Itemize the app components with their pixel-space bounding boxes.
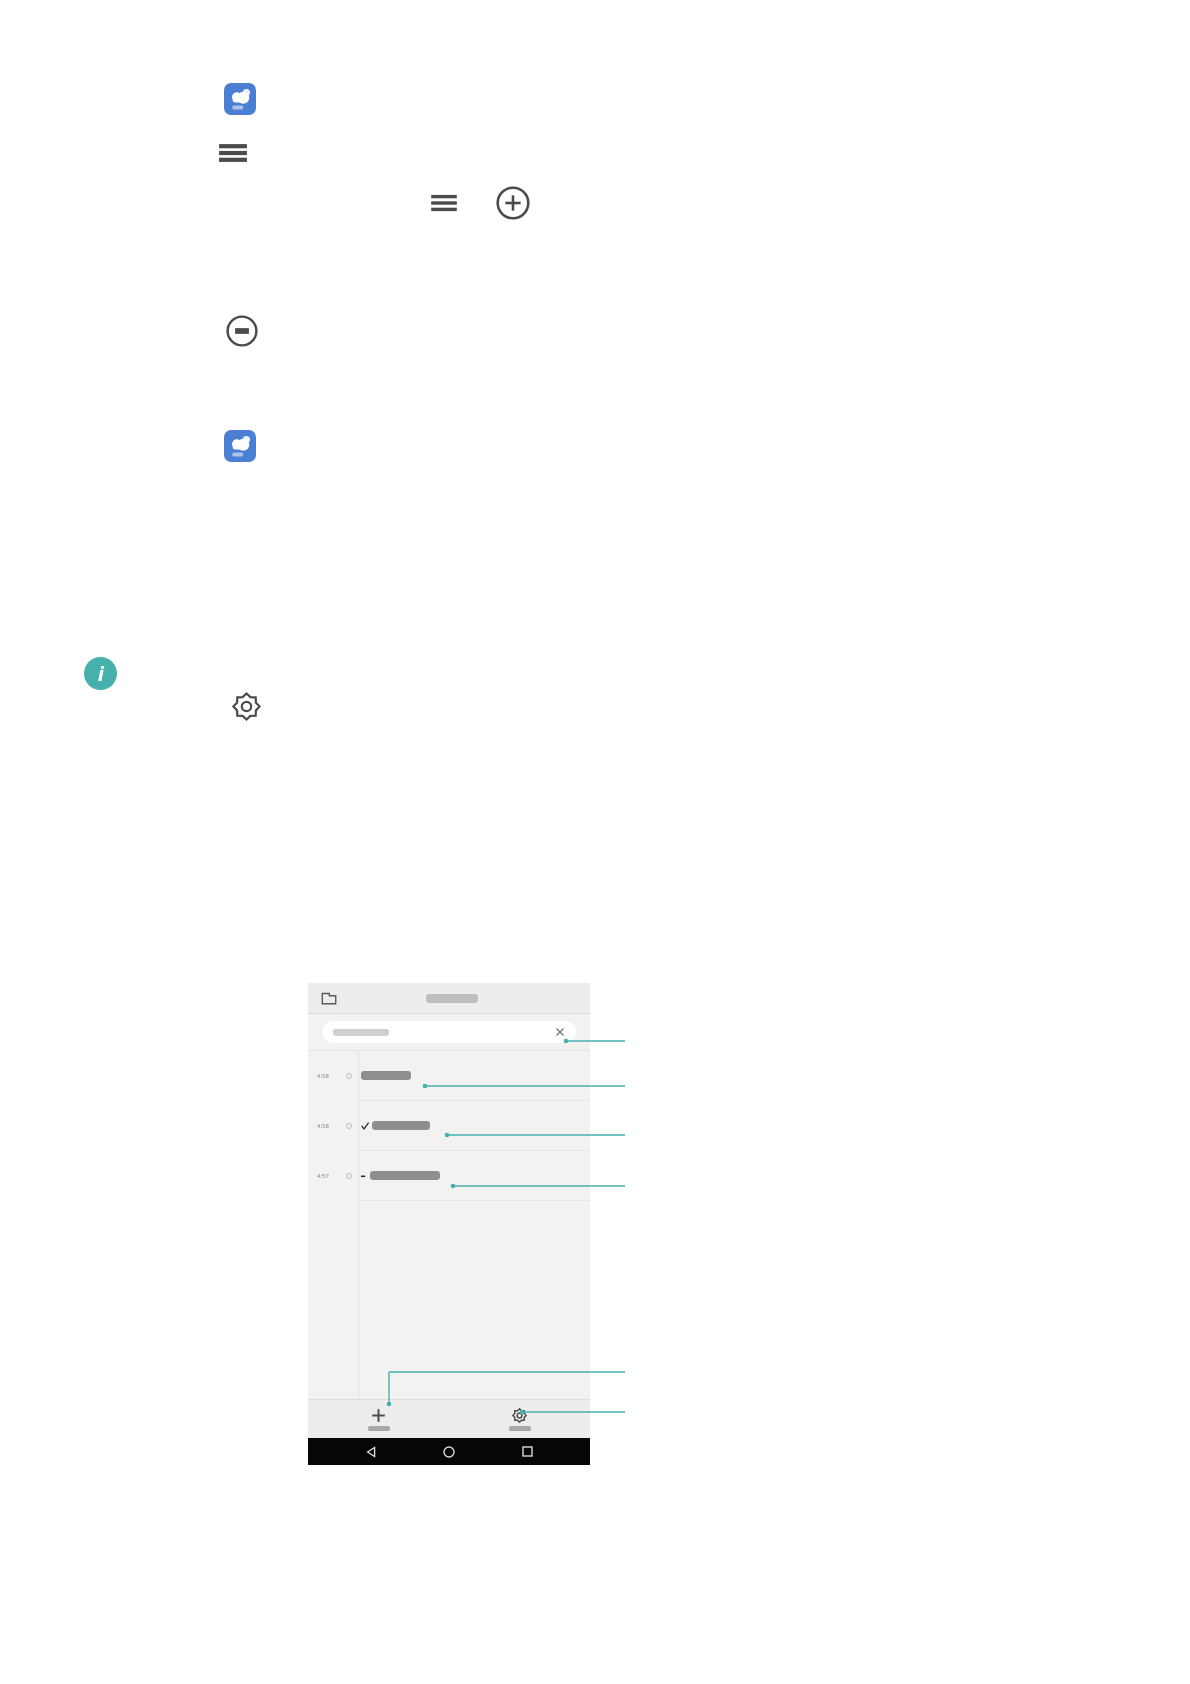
- button[interactable]: Menu: [428, 187, 460, 219]
- button[interactable]: Clear search: [322, 1021, 576, 1043]
- staticText: i: [98, 661, 104, 687]
- button[interactable]: Folders: [321, 990, 337, 1006]
- button[interactable]: Information: [84, 657, 117, 690]
- other: Clear search: [555, 1027, 565, 1037]
- button[interactable]: Recents: [512, 1438, 542, 1465]
- button[interactable]: Back: [356, 1438, 386, 1465]
- staticText: 4:58: [317, 1122, 346, 1130]
- staticText: 4:58: [317, 1072, 346, 1080]
- button[interactable]: Weather widget: [224, 430, 256, 462]
- button[interactable]: Menu: [216, 136, 250, 170]
- button[interactable]: 4:57: [308, 1151, 590, 1201]
- button[interactable]: 4:58: [308, 1101, 590, 1151]
- button[interactable]: Add: [496, 186, 530, 220]
- button[interactable]: Weather widget: [224, 83, 256, 115]
- button[interactable]: New note: [308, 1400, 449, 1438]
- button[interactable]: Settings: [449, 1400, 590, 1438]
- button[interactable]: Settings: [231, 691, 262, 722]
- staticText: 4:57: [317, 1172, 346, 1180]
- button[interactable]: Remove: [226, 315, 258, 347]
- button[interactable]: 4:58: [308, 1051, 590, 1101]
- button[interactable]: Home: [434, 1438, 464, 1465]
